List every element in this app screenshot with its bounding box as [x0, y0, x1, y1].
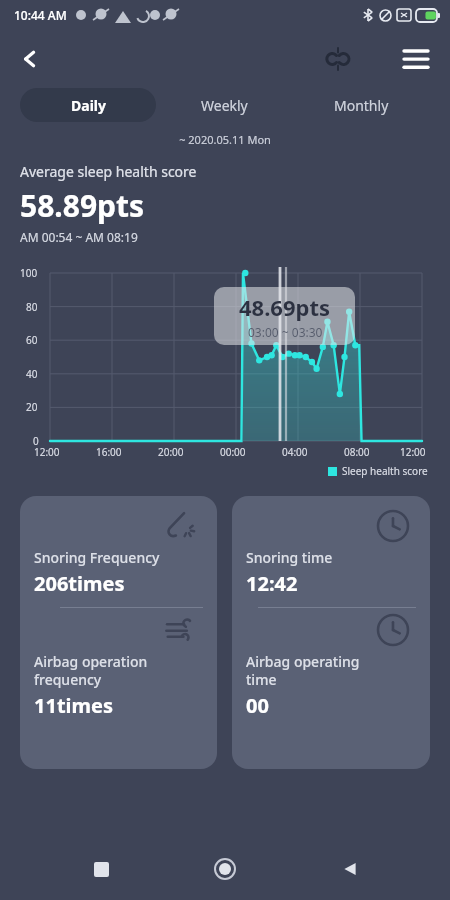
button[interactable]: Snoring Frequency: [20, 496, 217, 769]
staticText: Snoring time: [246, 548, 333, 567]
staticText: 100: [20, 266, 38, 280]
staticText: Snoring Frequency: [34, 548, 160, 567]
button[interactable]: Menu: [394, 37, 438, 81]
staticText: 11times: [34, 692, 114, 719]
button[interactable]: Back: [326, 845, 374, 893]
staticText: 12:00: [34, 445, 60, 459]
staticText: 08:00: [344, 445, 370, 459]
button[interactable]: Monthly: [293, 88, 430, 122]
staticText: 60: [26, 333, 38, 347]
staticText: 206times: [34, 570, 125, 597]
staticText: ~ 2020.05.11 Mon: [0, 132, 450, 147]
button[interactable]: Back: [8, 37, 52, 81]
staticText: 16:00: [96, 445, 122, 459]
staticText: Weekly: [201, 96, 248, 115]
staticText: 0: [33, 434, 39, 448]
button[interactable]: Weekly: [156, 88, 293, 122]
staticText: Average sleep health score: [20, 162, 197, 181]
button[interactable]: Snoring time: [232, 496, 430, 769]
staticText: 40: [26, 367, 38, 381]
staticText: Airbag operating time: [246, 652, 360, 689]
button[interactable]: Daily: [20, 88, 156, 122]
staticText: Sleep health score: [342, 464, 428, 478]
staticText: Daily: [71, 96, 106, 115]
staticText: 20:00: [158, 445, 184, 459]
staticText: 48.69pts: [239, 292, 331, 322]
staticText: Monthly: [334, 96, 389, 115]
button[interactable]: Unlink device: [316, 37, 360, 81]
staticText: 03:00 ~ 03:30: [248, 324, 323, 340]
staticText: 20: [26, 400, 38, 414]
staticText: 00:00: [220, 445, 246, 459]
staticText: 12:00: [400, 445, 426, 459]
staticText: AM 00:54 ~ AM 08:19: [20, 229, 138, 245]
staticText: 80: [26, 300, 38, 314]
staticText: 10:44 AM: [14, 7, 67, 23]
staticText: 00: [246, 692, 269, 719]
button[interactable]: Home: [201, 845, 249, 893]
staticText: 58.89pts: [20, 185, 145, 226]
staticText: Airbag operation frequency: [34, 652, 148, 689]
button[interactable]: Recents: [77, 845, 125, 893]
staticText: 12:42: [246, 570, 298, 597]
staticText: 04:00: [282, 445, 308, 459]
